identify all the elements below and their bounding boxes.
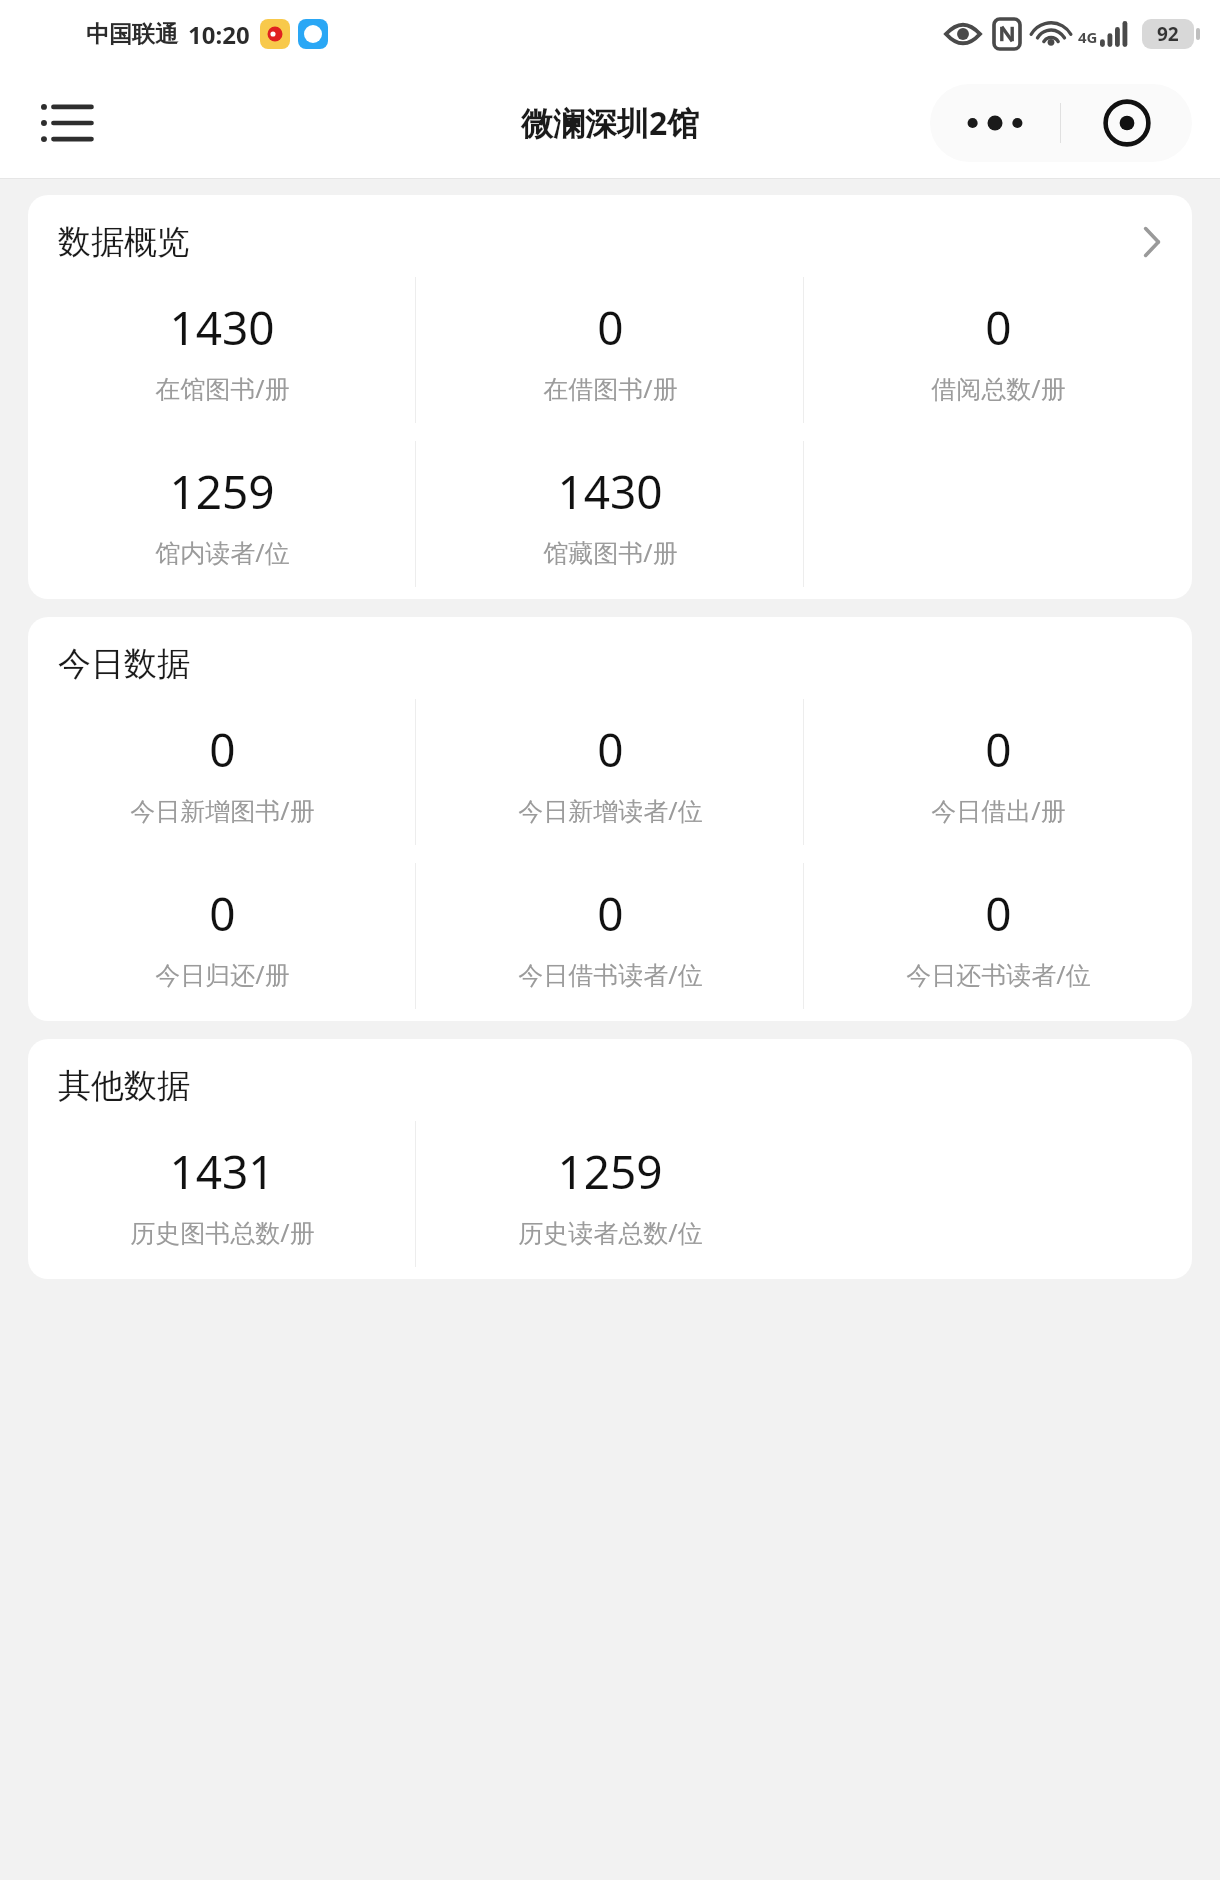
button[interactable]: Menu	[30, 85, 106, 161]
button[interactable]: More	[930, 84, 1060, 162]
staticText: 借阅总数/册	[931, 371, 1066, 405]
button[interactable]: 数据概览	[28, 221, 1192, 263]
staticText: 中国联通	[86, 20, 178, 49]
staticText: 在馆图书/册	[155, 371, 290, 405]
staticText: 今日新增读者/位	[518, 793, 703, 827]
staticText: 今日新增图书/册	[130, 793, 315, 827]
staticText: 历史读者总数/位	[518, 1215, 703, 1249]
button[interactable]: 1430	[28, 277, 416, 423]
staticText: 0	[209, 882, 236, 945]
staticText: 今日数据	[58, 643, 190, 685]
button[interactable]: 0	[416, 277, 804, 423]
staticText: 1430	[557, 460, 663, 523]
button[interactable]: Close	[1061, 84, 1192, 162]
button[interactable]: 1259	[416, 1121, 804, 1267]
staticText: 0	[597, 882, 624, 945]
staticText: 其他数据	[58, 1065, 190, 1107]
staticText: 1259	[169, 460, 275, 523]
button[interactable]: 1430	[416, 441, 804, 587]
staticText: 今日借出/册	[931, 793, 1066, 827]
staticText: 4G	[1078, 27, 1098, 47]
staticText: 0	[985, 718, 1012, 781]
staticText: 1431	[169, 1140, 275, 1203]
staticText: 微澜深圳2馆	[521, 101, 700, 145]
staticText: 今日借书读者/位	[518, 957, 703, 991]
staticText: 今日还书读者/位	[906, 957, 1091, 991]
button[interactable]: 1431	[28, 1121, 416, 1267]
button[interactable]: 0	[416, 863, 804, 1009]
staticText: 92	[1157, 21, 1179, 47]
button[interactable]: 0	[804, 277, 1192, 423]
button[interactable]: 0	[804, 863, 1192, 1009]
staticText: 1259	[557, 1140, 663, 1203]
staticText: 0	[985, 296, 1012, 359]
staticText: 馆内读者/位	[155, 535, 290, 569]
button[interactable]: 1259	[28, 441, 416, 587]
staticText: 0	[597, 296, 624, 359]
staticText: 馆藏图书/册	[543, 535, 678, 569]
staticText: 10:20	[188, 18, 250, 51]
staticText: 在借图书/册	[543, 371, 678, 405]
button[interactable]: 0	[416, 699, 804, 845]
button[interactable]: 0	[28, 699, 416, 845]
staticText: 0	[597, 718, 624, 781]
staticText: 历史图书总数/册	[130, 1215, 315, 1249]
staticText: 0	[985, 882, 1012, 945]
staticText: 0	[209, 718, 236, 781]
staticText: 数据概览	[58, 221, 190, 263]
staticText: 1430	[169, 296, 275, 359]
staticText: 今日归还/册	[155, 957, 290, 991]
button[interactable]: 0	[28, 863, 416, 1009]
button[interactable]: 0	[804, 699, 1192, 845]
